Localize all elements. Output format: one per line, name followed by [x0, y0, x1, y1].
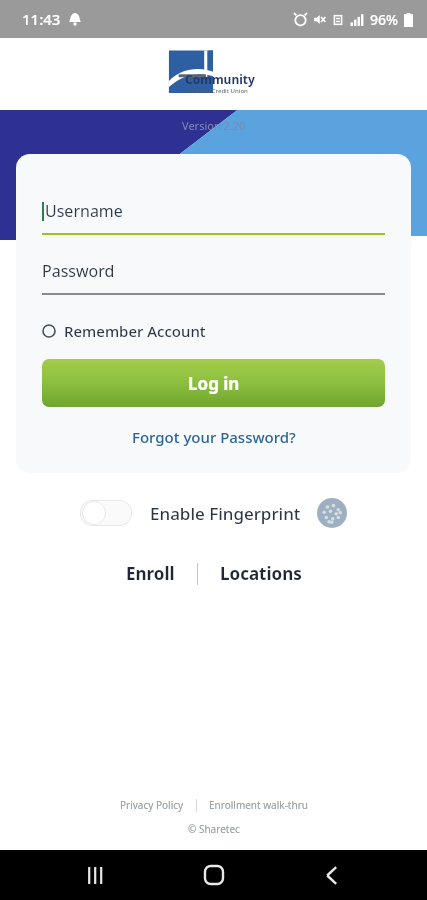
staticText: 96%: [370, 10, 398, 29]
button[interactable]: Back: [308, 851, 356, 899]
staticText: Password: [42, 260, 115, 282]
staticText: FEDERAL Credit Union: [185, 87, 248, 95]
button[interactable]: Log in: [42, 359, 385, 407]
staticText: Enrollment walk-thru: [209, 798, 308, 812]
staticText: Version 2.20: [182, 118, 246, 133]
staticText: Community: [185, 71, 255, 87]
button[interactable]: Enable Fingerprint toggle: [80, 500, 132, 526]
button[interactable]: Privacy Policy: [114, 796, 190, 814]
staticText: Remember Account: [64, 321, 206, 341]
staticText: Locations: [220, 562, 302, 585]
button[interactable]: Locations: [210, 558, 312, 589]
button[interactable]: Password: [42, 260, 385, 295]
button[interactable]: Remember Account: [42, 319, 206, 343]
button[interactable]: Username: [42, 200, 385, 235]
button[interactable]: Enrollment walk-thru: [203, 796, 314, 814]
staticText: Forgot your Password?: [132, 427, 296, 447]
staticText: © Sharetec: [188, 822, 240, 836]
button[interactable]: Home: [190, 851, 238, 899]
button[interactable]: Recent apps: [71, 851, 119, 899]
button[interactable]: Enroll: [116, 558, 185, 589]
button[interactable]: Riverside Community Federal Credit Union…: [165, 49, 263, 99]
button[interactable]: Forgot your Password?: [42, 423, 385, 451]
staticText: Log in: [188, 372, 240, 395]
staticText: Privacy Policy: [120, 798, 184, 812]
staticText: 11:43: [22, 9, 61, 29]
staticText: Enroll: [126, 562, 175, 585]
staticText: Username: [45, 200, 123, 222]
staticText: Enable Fingerprint: [150, 502, 301, 525]
button[interactable]: Fingerprint: [317, 498, 347, 528]
